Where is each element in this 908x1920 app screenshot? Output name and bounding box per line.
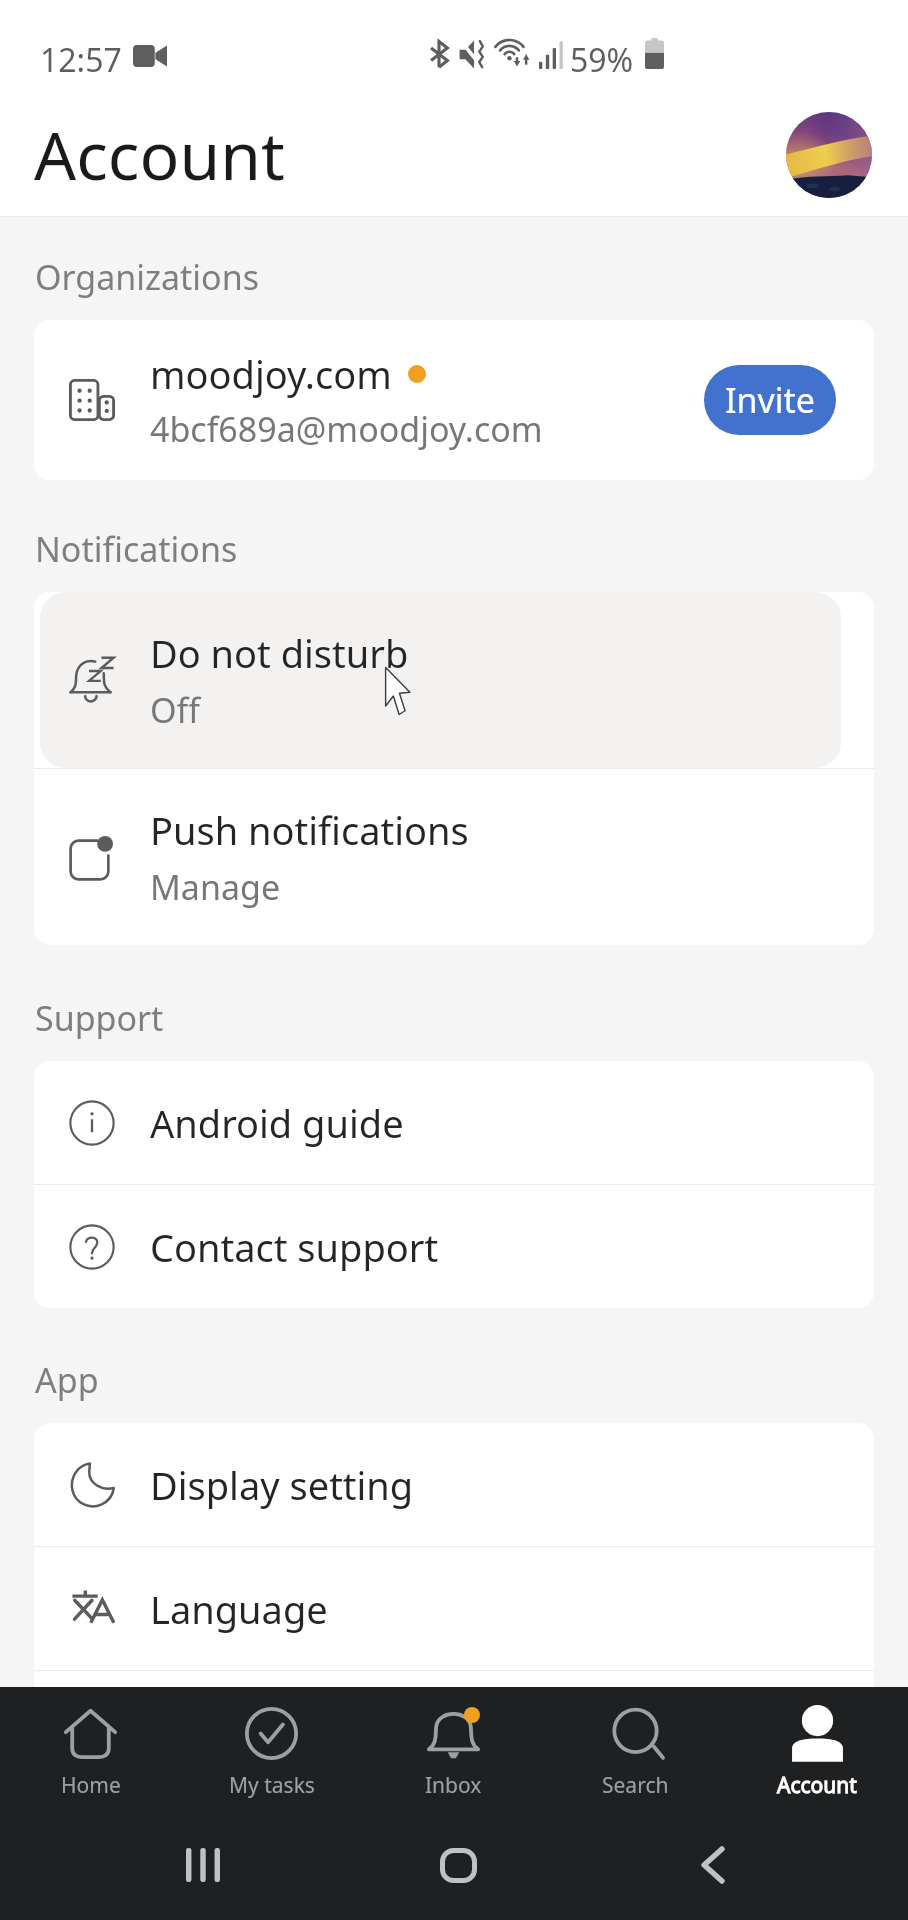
button[interactable]: Push notifications <box>34 769 874 945</box>
button[interactable]: Home <box>414 1821 502 1909</box>
button[interactable]: Language <box>34 1547 874 1670</box>
button[interactable]: Profile <box>786 112 872 198</box>
staticText: moodjoy.com <box>150 348 392 400</box>
staticText: My tasks <box>229 1771 315 1800</box>
staticText: Inbox <box>425 1771 482 1800</box>
staticText: Contact support <box>150 1221 439 1273</box>
staticText: 4bcf689a@moodjoy.com <box>150 406 543 452</box>
staticText: Home <box>61 1771 121 1800</box>
staticText: Invite <box>725 377 816 423</box>
staticText: Push notifications <box>150 804 469 856</box>
staticText: Language <box>150 1583 328 1635</box>
button[interactable]: Invite <box>704 365 836 435</box>
staticText: Do not disturb <box>150 627 409 679</box>
staticText: 12:57 <box>40 38 122 82</box>
button[interactable]: Account <box>726 1687 908 1822</box>
staticText: Display setting <box>150 1459 414 1511</box>
button[interactable]: Inbox <box>362 1687 544 1822</box>
button[interactable]: Display setting <box>34 1423 874 1546</box>
button[interactable]: Do not disturb <box>34 592 874 768</box>
staticText: Organizations <box>35 254 259 300</box>
button[interactable]: Home <box>0 1687 181 1822</box>
button[interactable]: Contact support <box>34 1185 874 1308</box>
staticText: App <box>35 1357 99 1403</box>
button[interactable]: Region <box>34 1671 874 1794</box>
button[interactable]: Android guide <box>34 1061 874 1184</box>
button[interactable]: Search <box>544 1687 726 1822</box>
staticText: Account <box>777 1771 857 1800</box>
staticText: Off <box>150 687 200 733</box>
staticText: Android guide <box>150 1097 404 1149</box>
button[interactable]: moodjoy.com <box>34 320 874 480</box>
staticText: 59% <box>570 38 634 82</box>
staticText: Notifications <box>35 526 238 572</box>
button[interactable]: Back <box>668 1821 756 1909</box>
button[interactable]: Recent apps <box>159 1821 247 1909</box>
staticText: Manage <box>150 864 281 910</box>
staticText: Support <box>35 995 164 1041</box>
staticText: Account <box>34 109 285 199</box>
button[interactable]: My tasks <box>181 1687 362 1822</box>
staticText: Search <box>602 1771 669 1800</box>
staticText: Region <box>150 1707 275 1759</box>
